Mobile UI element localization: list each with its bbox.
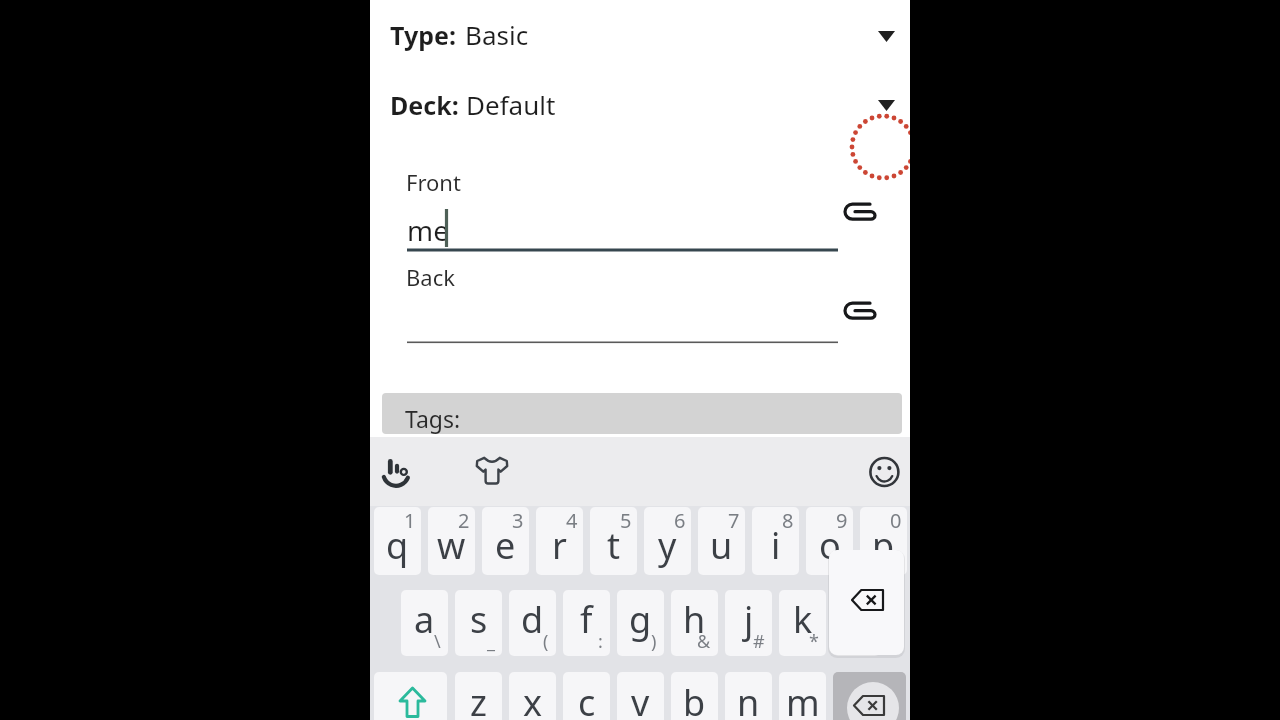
staticText: q bbox=[386, 521, 409, 570]
button[interactable]: v bbox=[617, 672, 664, 720]
staticText: v bbox=[631, 678, 650, 720]
button[interactable] bbox=[833, 672, 906, 720]
button[interactable]: g bbox=[617, 590, 664, 656]
button[interactable]: q bbox=[374, 507, 421, 575]
staticText: m bbox=[786, 678, 820, 720]
staticText: : bbox=[598, 629, 603, 654]
staticText: p bbox=[872, 521, 895, 570]
staticText: ) bbox=[651, 629, 657, 654]
staticText: Default bbox=[466, 87, 556, 122]
staticText: _ bbox=[487, 629, 495, 654]
button[interactable]: j bbox=[725, 590, 772, 656]
staticText: 1 bbox=[404, 507, 416, 534]
button[interactable]: k bbox=[779, 590, 826, 656]
staticText: 2 bbox=[458, 507, 470, 534]
button[interactable]: r bbox=[536, 507, 583, 575]
button[interactable] bbox=[370, 10, 910, 65]
staticText: o bbox=[819, 521, 841, 570]
staticText: ( bbox=[543, 629, 549, 654]
button[interactable]: n bbox=[725, 672, 772, 720]
staticText: 3 bbox=[512, 507, 524, 534]
button[interactable]: w bbox=[428, 507, 475, 575]
button[interactable]: b bbox=[671, 672, 718, 720]
staticText: g bbox=[629, 595, 652, 644]
button[interactable]: e bbox=[482, 507, 529, 575]
staticText: z bbox=[470, 678, 487, 720]
staticText: & bbox=[697, 629, 711, 654]
staticText: 4 bbox=[566, 507, 578, 534]
button[interactable]: a bbox=[401, 590, 448, 656]
staticText: k bbox=[793, 595, 813, 644]
staticText: y bbox=[658, 521, 677, 570]
button[interactable]: c bbox=[563, 672, 610, 720]
staticText: w bbox=[437, 521, 466, 570]
button[interactable]: s bbox=[455, 590, 502, 656]
button[interactable] bbox=[382, 393, 902, 434]
button[interactable] bbox=[370, 80, 910, 135]
staticText: x bbox=[523, 678, 543, 720]
staticText: Front bbox=[406, 167, 461, 197]
staticText: n bbox=[737, 678, 760, 720]
staticText: r bbox=[552, 521, 567, 570]
staticText: 7 bbox=[728, 507, 740, 534]
button[interactable]: x bbox=[509, 672, 556, 720]
staticText: # bbox=[753, 629, 765, 654]
button[interactable] bbox=[468, 448, 516, 496]
staticText: * bbox=[809, 629, 819, 654]
staticText: b bbox=[683, 678, 706, 720]
staticText: 5 bbox=[620, 507, 632, 534]
staticText: i bbox=[771, 521, 781, 570]
staticText: \ bbox=[434, 629, 441, 654]
button[interactable]: z bbox=[455, 672, 502, 720]
button[interactable]: o bbox=[806, 507, 853, 575]
staticText: 6 bbox=[674, 507, 686, 534]
staticText: f bbox=[580, 595, 593, 644]
staticText: l bbox=[852, 595, 862, 644]
staticText: s bbox=[470, 595, 488, 644]
button[interactable] bbox=[864, 448, 906, 496]
staticText: Deck: bbox=[390, 88, 459, 122]
staticText: h bbox=[683, 595, 706, 644]
staticText: 8 bbox=[782, 507, 794, 534]
button[interactable]: d bbox=[509, 590, 556, 656]
staticText: 9 bbox=[836, 507, 848, 534]
staticText: Type: bbox=[390, 18, 456, 52]
staticText: d bbox=[521, 595, 544, 644]
staticText: me bbox=[407, 211, 449, 249]
staticText: j bbox=[744, 595, 754, 644]
staticText: 0 bbox=[890, 507, 902, 534]
button[interactable]: f bbox=[563, 590, 610, 656]
staticText: Tags: bbox=[405, 403, 461, 434]
staticText: e bbox=[495, 521, 516, 570]
button[interactable]: i bbox=[752, 507, 799, 575]
staticText: Basic bbox=[465, 17, 529, 52]
button[interactable]: l bbox=[833, 590, 880, 656]
button[interactable]: y bbox=[644, 507, 691, 575]
staticText: Back bbox=[406, 262, 455, 292]
staticText: u bbox=[710, 521, 733, 570]
staticText: t bbox=[607, 521, 620, 570]
button[interactable] bbox=[407, 295, 837, 345]
button[interactable] bbox=[407, 200, 837, 250]
staticText: c bbox=[578, 678, 596, 720]
button[interactable]: p bbox=[860, 507, 907, 575]
button[interactable] bbox=[378, 448, 426, 496]
staticText: a bbox=[414, 595, 435, 644]
button[interactable]: t bbox=[590, 507, 637, 575]
button[interactable]: h bbox=[671, 590, 718, 656]
button[interactable]: u bbox=[698, 507, 745, 575]
button[interactable] bbox=[374, 672, 447, 720]
button[interactable]: m bbox=[779, 672, 826, 720]
